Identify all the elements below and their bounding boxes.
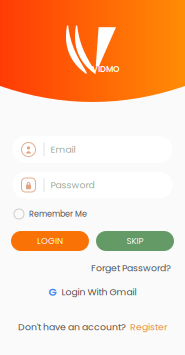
button[interactable]: Email — [12, 136, 172, 163]
button[interactable]: Password — [12, 171, 172, 198]
button[interactable]: Register — [130, 320, 167, 334]
staticText: G — [48, 284, 56, 299]
button[interactable]: Remember Me — [14, 208, 104, 220]
staticText: VIDMO — [92, 63, 119, 75]
staticText: Forget Password? — [91, 261, 171, 275]
staticText: Register — [130, 320, 167, 334]
staticText: SKIP — [126, 235, 143, 247]
button[interactable]: G — [48, 285, 136, 298]
staticText: Login With Gmail — [61, 285, 136, 299]
staticText: Remember Me — [29, 208, 87, 220]
staticText: Password — [50, 178, 94, 192]
button[interactable]: Forget Password? — [89, 262, 173, 274]
button[interactable]: SKIP — [96, 231, 174, 251]
staticText: LOGIN — [37, 235, 63, 247]
button[interactable]: LOGIN — [11, 231, 89, 251]
staticText: Email — [50, 143, 75, 156]
staticText: Don't have an account? — [18, 320, 126, 334]
